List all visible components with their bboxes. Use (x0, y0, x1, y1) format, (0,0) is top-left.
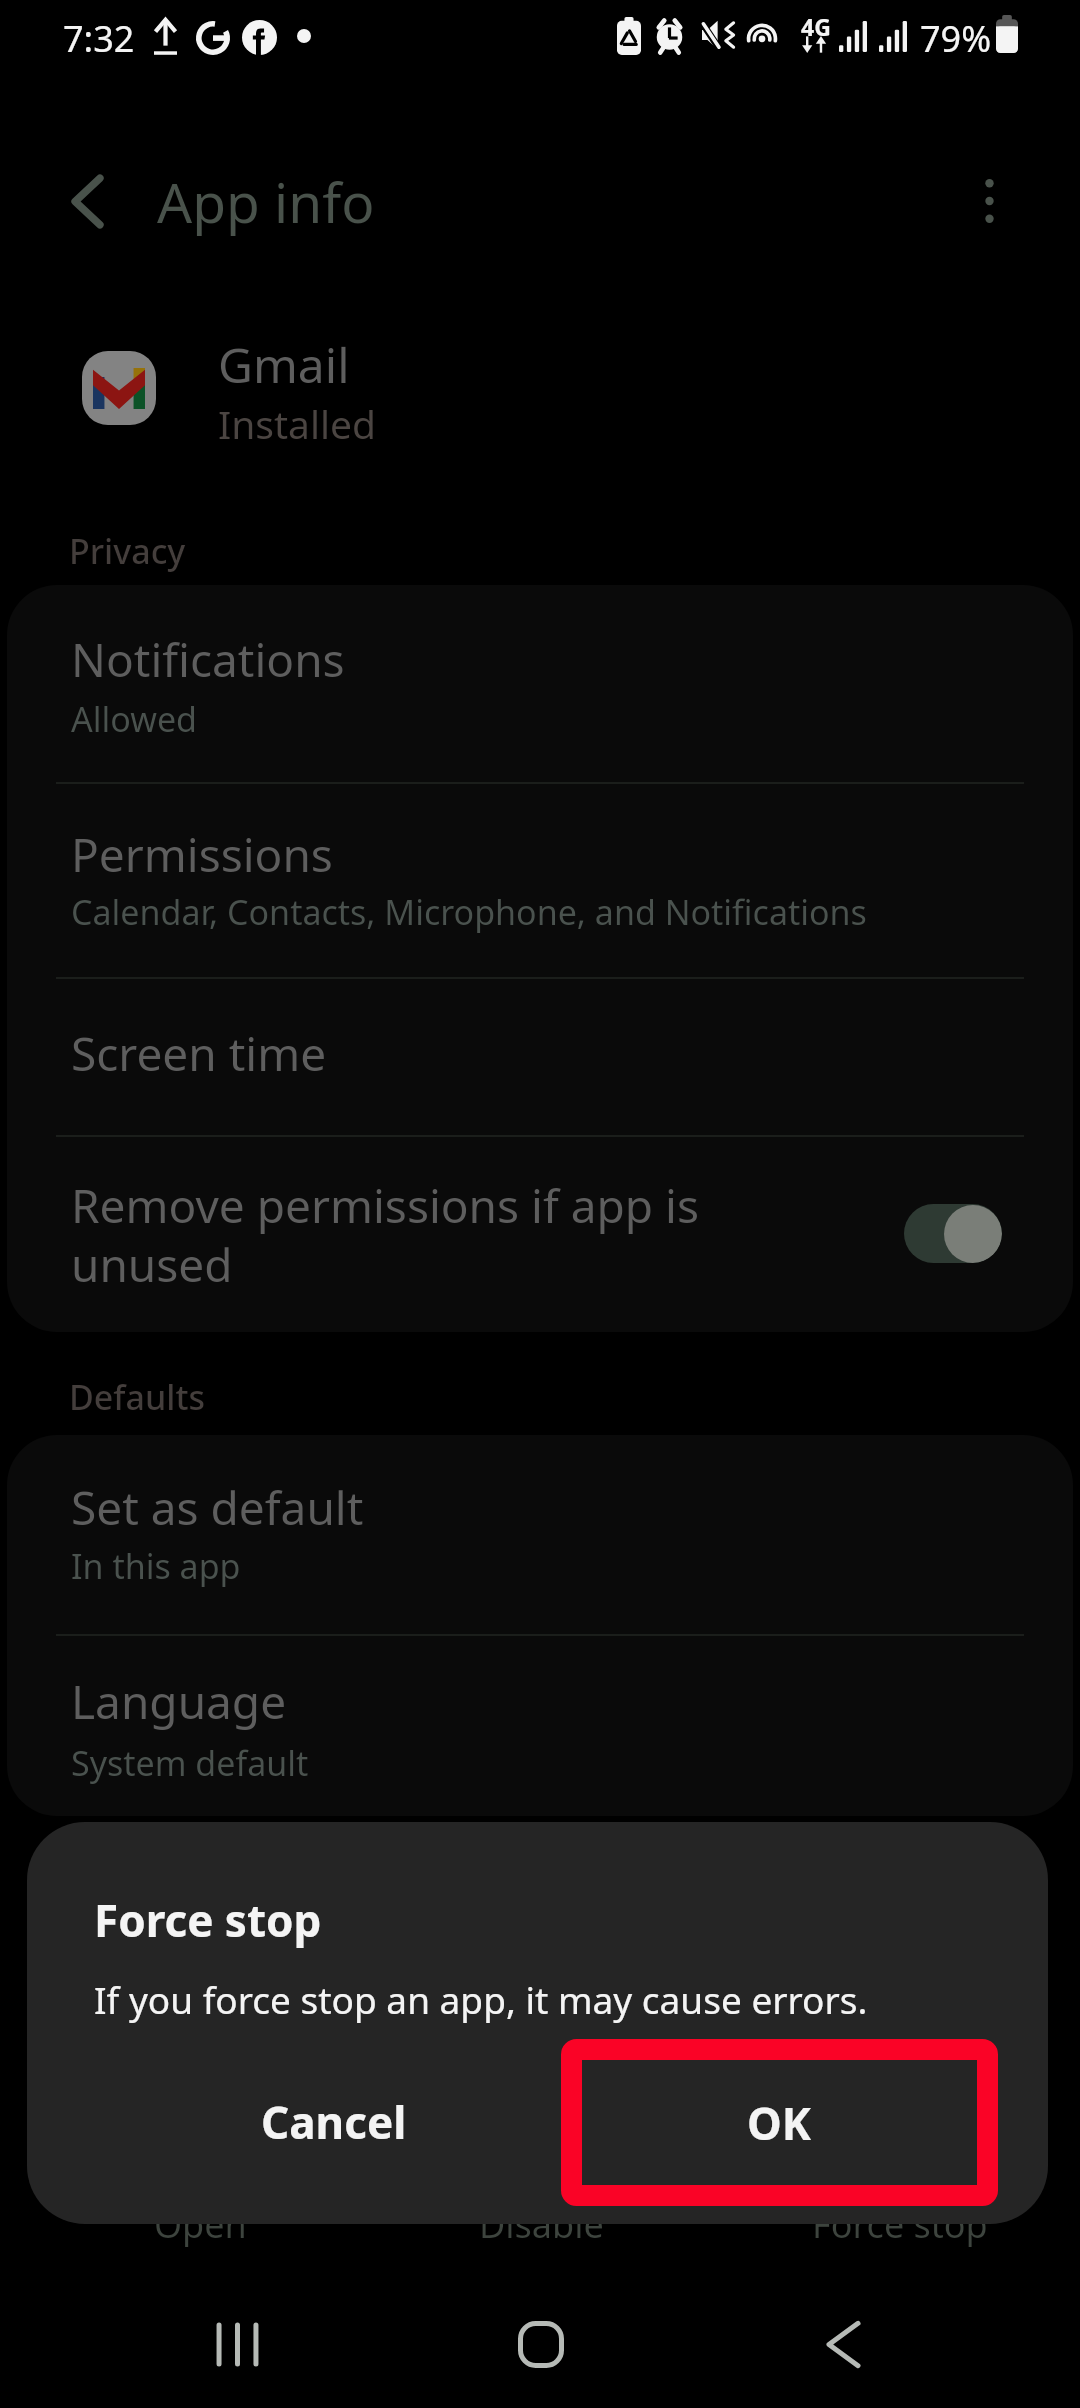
button[interactable]: Recents (181, 2284, 293, 2404)
staticText: Set as default (71, 1476, 364, 1539)
button[interactable]: Screen time (7, 977, 1073, 1135)
button[interactable]: Cancel (140, 2039, 528, 2205)
staticText: Cancel (261, 2092, 407, 2152)
button[interactable]: Home (485, 2284, 597, 2404)
staticText: OK (747, 2093, 812, 2153)
button[interactable]: Navigate up (43, 161, 131, 241)
staticText: If you force stop an app, it may cause e… (94, 1974, 868, 2024)
button[interactable]: Notifications (7, 585, 1073, 782)
button[interactable]: Back (787, 2284, 899, 2404)
staticText: 7:32 (63, 14, 135, 63)
staticText: Language (71, 1670, 287, 1733)
staticText: Remove permissions if app is unused (71, 1174, 699, 1295)
staticText: In this app (71, 1543, 241, 1589)
staticText: Force stop (94, 1890, 322, 1950)
staticText: 79% (920, 14, 992, 63)
staticText: Gmail (218, 332, 350, 397)
button[interactable]: Permissions (7, 782, 1073, 977)
staticText: Calendar, Contacts, Microphone, and Noti… (71, 889, 867, 935)
button[interactable]: Remove permissions if app is unused (7, 1135, 1073, 1332)
staticText: App info (157, 164, 375, 239)
button[interactable]: More options (945, 161, 1033, 241)
staticText: Installed (218, 397, 377, 450)
staticText: 4G (801, 11, 831, 42)
staticText: Force stop (812, 2200, 988, 2249)
button[interactable]: Language (7, 1634, 1073, 1816)
staticText: Screen time (71, 1022, 327, 1085)
staticText: Privacy (69, 528, 186, 574)
button[interactable]: OK (561, 2039, 998, 2206)
staticText: Allowed (71, 696, 197, 742)
staticText: Notifications (71, 628, 345, 691)
staticText: Disable (479, 2200, 604, 2249)
staticText: Defaults (69, 1374, 205, 1420)
staticText: System default (71, 1740, 309, 1786)
button[interactable]: Set as default (7, 1435, 1073, 1634)
staticText: Open (154, 2200, 247, 2249)
staticText: Permissions (71, 823, 333, 886)
